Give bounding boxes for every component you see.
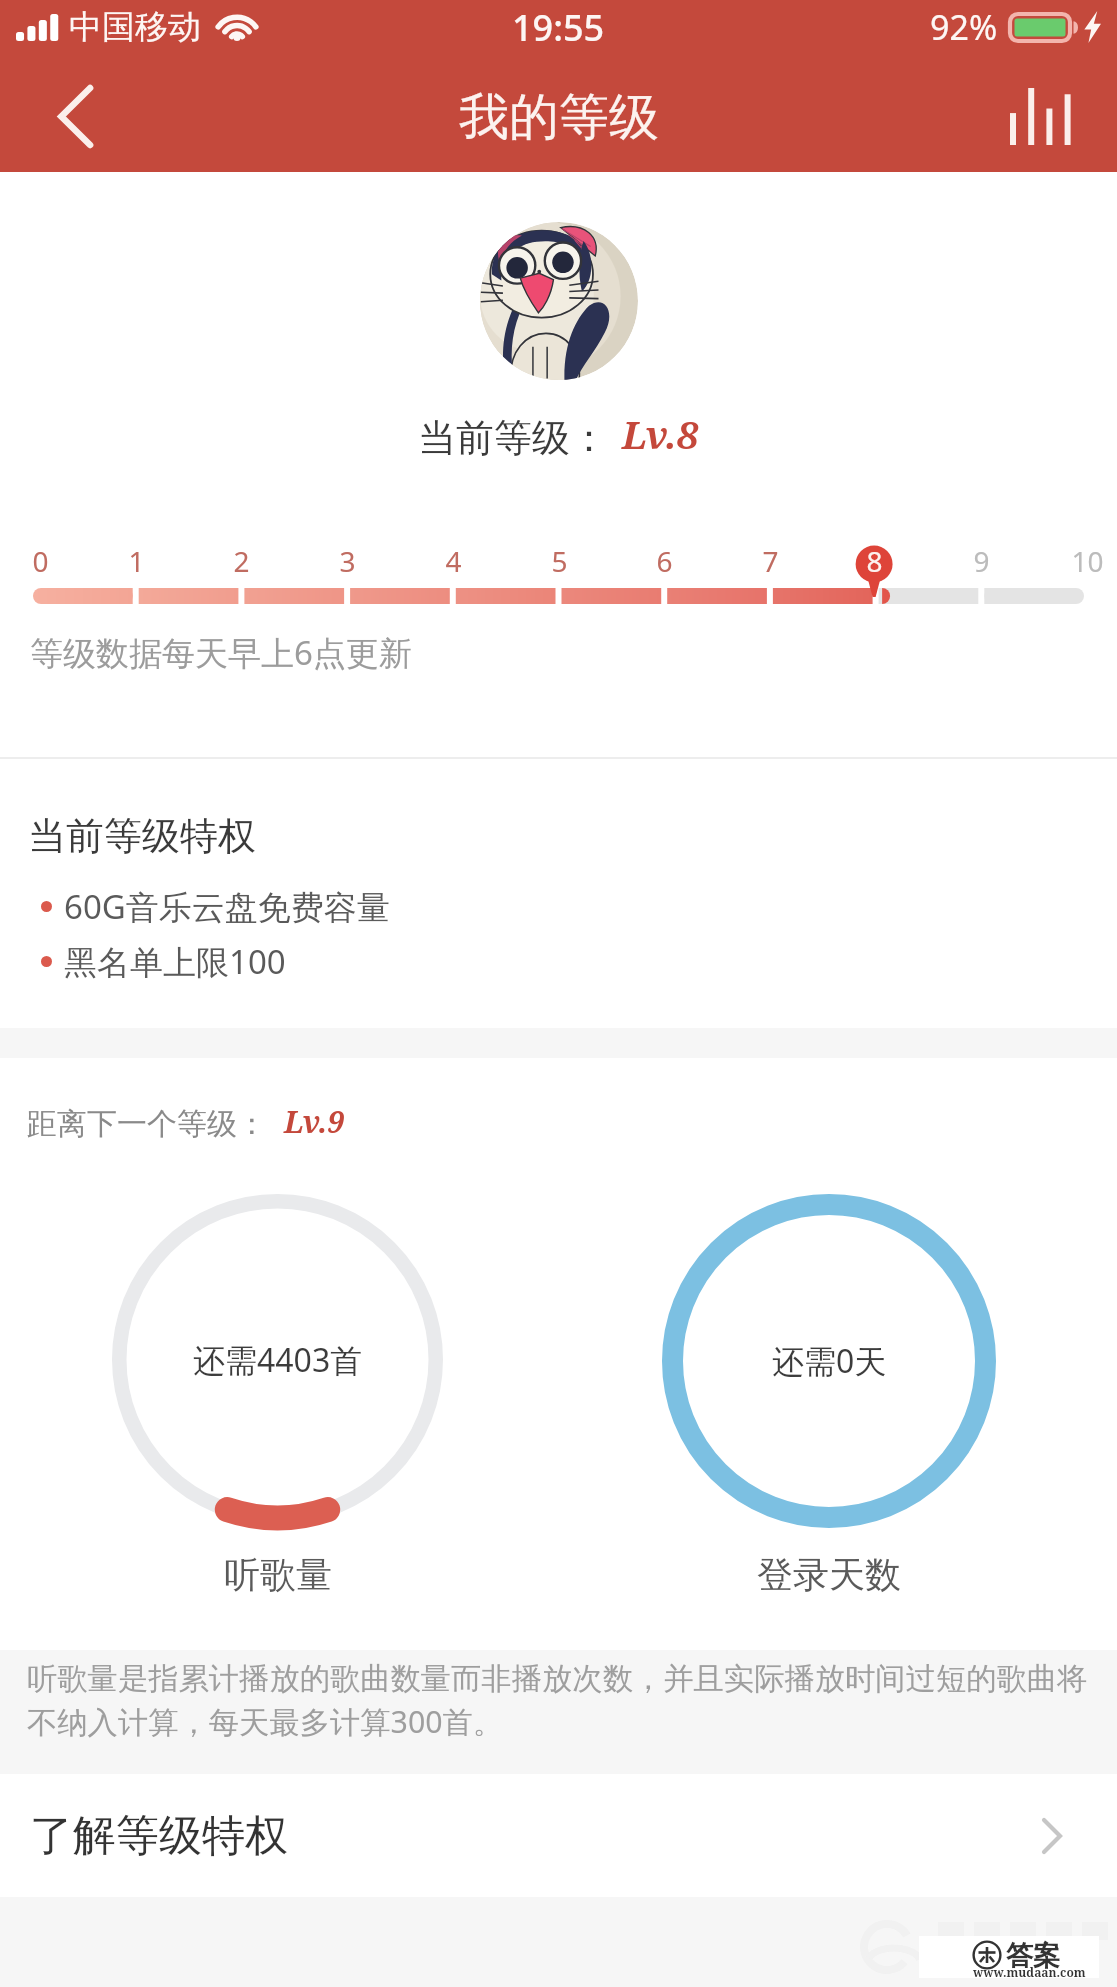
staticText: 当前等级特权 [28,812,256,860]
staticText: 3 [339,542,356,580]
staticText: 等级数据每天早上6点更新 [30,630,412,675]
staticText: www.mudaan.com [973,1964,1086,1980]
staticText: 还需0天 [772,1339,887,1383]
staticText: 5 [551,542,568,580]
staticText: 1 [128,542,145,580]
staticText: 听歌量是指累计播放的歌曲数量而非播放次数，并且实际播放时间过短的歌曲将不纳入计算… [27,1660,1092,1742]
staticText: 8 [866,542,883,580]
staticText: 92% [930,4,998,50]
staticText: 了解等级特权 [30,1809,288,1863]
staticText: 0 [32,542,49,580]
staticText: 7 [762,542,779,580]
button[interactable]: 了解等级特权 [0,1774,1117,1897]
staticText: 6 [656,542,673,580]
staticText: 19:55 [512,3,605,52]
staticText: 10 [1071,542,1104,580]
staticText: 听歌量 [224,1552,332,1597]
staticText: 登录天数 [757,1552,901,1597]
staticText: 中国移动 [69,6,201,48]
staticText: 我的等级 [459,86,659,149]
staticText: Lv.9 [284,1101,345,1142]
staticText: 距离下一个等级： [27,1105,267,1143]
staticText: 答案 [1006,1939,1060,1973]
staticText: 9 [973,542,990,580]
staticText: 还需4403首 [193,1338,363,1382]
staticText: 当前等级： [418,414,608,462]
button[interactable]: Back [0,68,150,172]
button[interactable]: Statistics [997,68,1117,172]
staticText: 60G音乐云盘免费容量 [64,884,390,929]
staticText: 4 [445,542,462,580]
staticText: Lv.8 [622,408,699,460]
staticText: 2 [233,542,250,580]
staticText: 黑名单上限100 [64,939,286,984]
